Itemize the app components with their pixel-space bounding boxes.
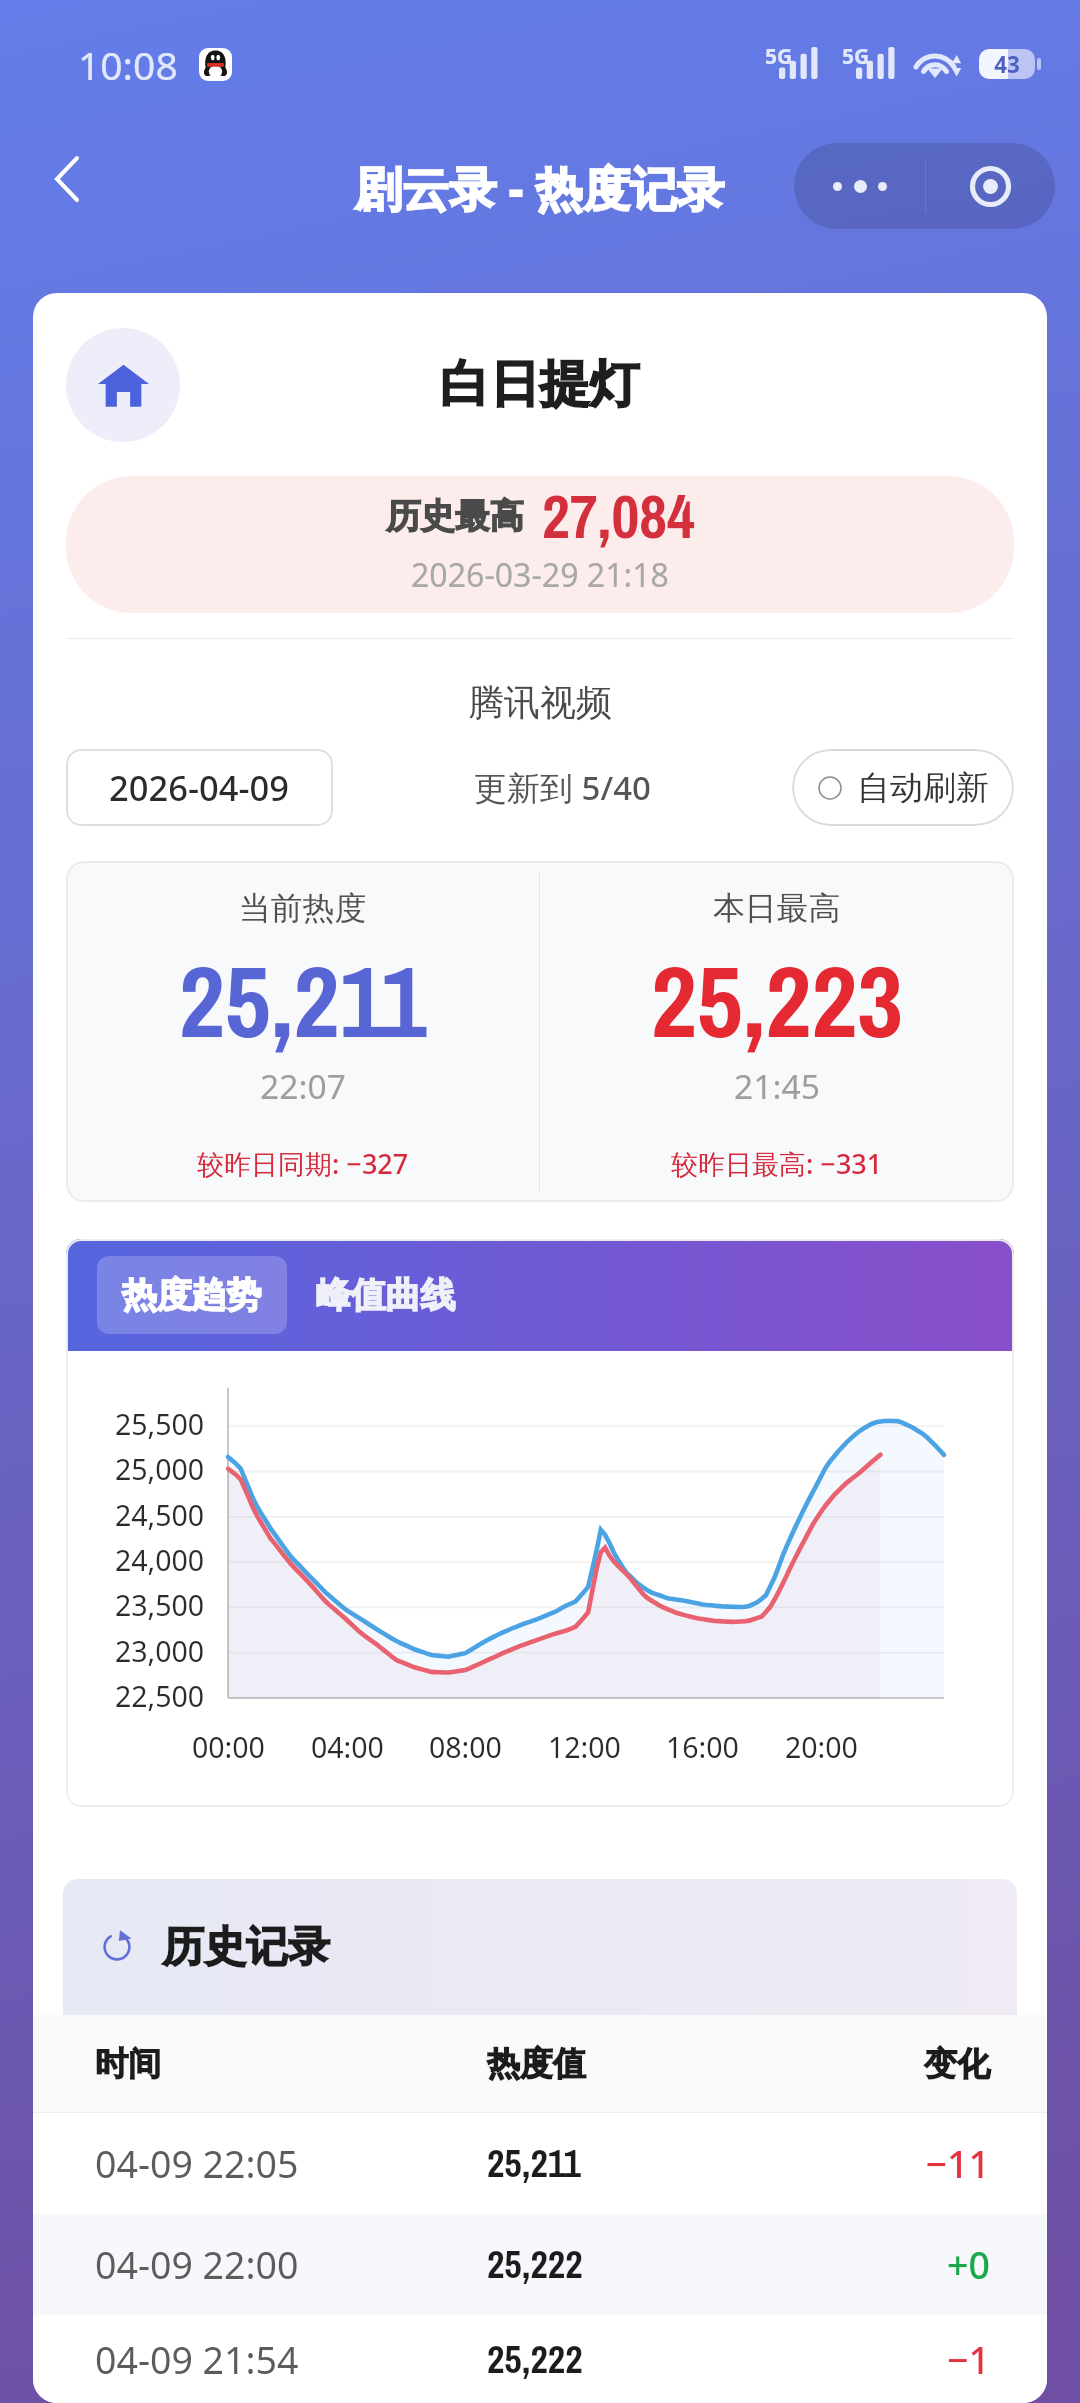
staticText: 23,000 (115, 1632, 205, 1671)
staticText: 22,500 (115, 1677, 205, 1716)
staticText: 08:00 (429, 1728, 502, 1767)
button[interactable]: 04-09 22:00 (33, 2214, 1047, 2315)
staticText: −11 (767, 2138, 990, 2189)
staticText: 16:00 (666, 1728, 739, 1767)
staticText: 热度趋势 (122, 1273, 262, 1317)
staticText: 本日最高 (713, 888, 841, 928)
staticText: 25,500 (115, 1405, 205, 1444)
staticText: 04:00 (311, 1728, 384, 1767)
staticText: 00:00 (192, 1728, 265, 1767)
staticText: 22:07 (260, 1063, 346, 1109)
staticText: 剧云录 - 热度记录 (355, 156, 725, 220)
staticText: 10:08 (78, 38, 178, 91)
staticText: 25,211 (179, 933, 427, 1053)
staticText: 25,000 (115, 1450, 205, 1489)
staticText: 04-09 22:00 (95, 2239, 487, 2290)
staticText: 5G (842, 42, 870, 71)
staticText: 25,222 (487, 2334, 767, 2385)
staticText: 25,223 (651, 933, 904, 1053)
staticText: 当前热度 (239, 888, 367, 928)
button[interactable]: 自动刷新 (792, 749, 1014, 826)
staticText: 腾讯视频 (468, 680, 612, 725)
staticText: 5G (765, 42, 793, 71)
staticText: 21:45 (734, 1063, 820, 1109)
staticText: 历史最高 (386, 495, 524, 538)
staticText: 2026-03-29 21:18 (411, 553, 669, 597)
staticText: 25,211 (487, 2138, 767, 2189)
staticText: 24,000 (115, 1541, 205, 1580)
staticText: 12:00 (548, 1728, 621, 1767)
staticText: 24,500 (115, 1496, 205, 1535)
staticText: −1 (767, 2334, 990, 2385)
button[interactable]: Close (926, 143, 1055, 229)
staticText: 25,222 (487, 2239, 767, 2290)
staticText: 白日提灯 (440, 353, 640, 416)
staticText: 2026-04-09 (109, 764, 290, 811)
staticText: 变化 (767, 2043, 990, 2085)
staticText: 04-09 21:54 (95, 2334, 487, 2385)
button[interactable]: 04-09 22:05 (33, 2113, 1047, 2214)
staticText: 43 (979, 49, 1035, 79)
staticText: 较昨日最高: −331 (671, 1145, 883, 1182)
button[interactable]: 热度趋势 (97, 1256, 287, 1334)
staticText: 历史记录 (162, 1921, 330, 1974)
staticText: 较昨日同期: −327 (197, 1145, 409, 1182)
button[interactable]: 峰值曲线 (287, 1256, 485, 1334)
staticText: 20:00 (785, 1728, 858, 1767)
button[interactable]: More (794, 143, 925, 229)
button[interactable]: 2026-04-09 (66, 749, 333, 826)
button[interactable]: Back (13, 125, 121, 233)
staticText: 更新到 5/40 (474, 765, 651, 810)
button[interactable]: Home (66, 328, 180, 442)
staticText: 04-09 22:05 (95, 2138, 487, 2189)
staticText: 时间 (95, 2043, 487, 2085)
staticText: 23,500 (115, 1586, 205, 1625)
staticText: 27,084 (542, 476, 695, 557)
staticText: +0 (767, 2239, 990, 2290)
button[interactable]: 04-09 21:54 (33, 2315, 1047, 2403)
staticText: 峰值曲线 (316, 1273, 456, 1317)
staticText: 自动刷新 (857, 767, 989, 809)
staticText: 热度值 (487, 2043, 767, 2085)
